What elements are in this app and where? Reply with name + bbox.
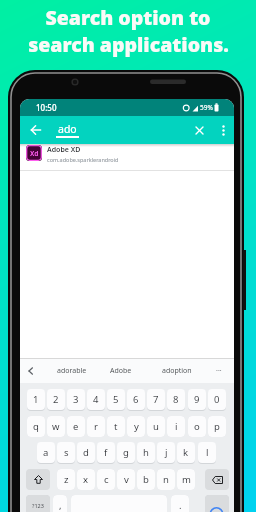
button[interactable]: w xyxy=(47,416,65,437)
staticText: 2 xyxy=(53,393,59,406)
staticText: search applications. xyxy=(28,31,229,58)
button[interactable]: a xyxy=(37,442,55,463)
staticText: g xyxy=(123,446,129,459)
button[interactable]: m xyxy=(177,469,195,490)
button[interactable]: c xyxy=(97,469,115,490)
staticText: ··· xyxy=(216,366,222,376)
button[interactable]: 0 xyxy=(208,389,226,410)
button[interactable]: u xyxy=(147,416,165,437)
staticText: s xyxy=(64,446,69,459)
staticText: o xyxy=(194,420,200,433)
staticText: m xyxy=(182,473,191,486)
button[interactable]: o xyxy=(188,416,206,437)
button[interactable]: ?123 xyxy=(26,495,50,512)
staticText: k xyxy=(183,446,189,459)
staticText: u xyxy=(153,420,159,433)
button[interactable]: . xyxy=(171,495,189,512)
button[interactable]: ado xyxy=(56,122,79,138)
button[interactable]: j xyxy=(157,442,175,463)
button[interactable]: Xd xyxy=(20,144,234,170)
button[interactable]: 5 xyxy=(107,389,125,410)
button[interactable]: s xyxy=(57,442,75,463)
button[interactable]: 8 xyxy=(167,389,185,410)
staticText: 1 xyxy=(33,393,39,406)
button[interactable]: b xyxy=(137,469,155,490)
button[interactable]: e xyxy=(67,416,85,437)
button[interactable]: k xyxy=(177,442,195,463)
button[interactable]: 9 xyxy=(188,389,206,410)
staticText: b xyxy=(143,473,149,486)
button[interactable]: l xyxy=(198,442,216,463)
button[interactable] xyxy=(205,495,229,512)
button[interactable]: h xyxy=(137,442,155,463)
staticText: . xyxy=(179,499,182,512)
button[interactable]: q xyxy=(27,416,45,437)
staticText: 6 xyxy=(133,393,139,406)
button[interactable]: g xyxy=(117,442,135,463)
staticText: 59% xyxy=(200,103,213,112)
button[interactable]: 4 xyxy=(87,389,105,410)
staticText: r xyxy=(94,420,98,433)
staticText: a xyxy=(43,446,49,459)
button[interactable] xyxy=(205,469,229,490)
staticText: 8 xyxy=(173,393,179,406)
staticText: , xyxy=(59,499,62,512)
button[interactable]: t xyxy=(107,416,125,437)
button[interactable]: v xyxy=(117,469,135,490)
button[interactable] xyxy=(26,469,50,490)
staticText: ado xyxy=(58,122,77,136)
button[interactable] xyxy=(29,123,43,137)
button[interactable]: 3 xyxy=(67,389,85,410)
staticText: com.adobe.sparklerandroid xyxy=(47,156,119,163)
button[interactable]: p xyxy=(208,416,226,437)
staticText: v xyxy=(124,473,129,486)
staticText: f xyxy=(104,446,108,459)
button[interactable]: x xyxy=(77,469,95,490)
staticText: 3 xyxy=(73,393,79,406)
button[interactable]: z xyxy=(57,469,75,490)
button[interactable]: 1 xyxy=(27,389,45,410)
staticText: 9 xyxy=(194,393,200,406)
button[interactable]: i xyxy=(167,416,185,437)
staticText: l xyxy=(206,446,209,459)
button[interactable]: f xyxy=(97,442,115,463)
staticText: t xyxy=(114,420,118,433)
button[interactable]: 6 xyxy=(127,389,145,410)
staticText: q xyxy=(33,420,39,433)
button[interactable]: 2 xyxy=(47,389,65,410)
button[interactable]: d xyxy=(77,442,95,463)
staticText: x xyxy=(83,473,89,486)
staticText: 10:50 xyxy=(36,102,57,113)
button[interactable]: 7 xyxy=(147,389,165,410)
staticText: w xyxy=(52,420,60,433)
staticText: 0 xyxy=(214,393,220,406)
staticText: y xyxy=(134,420,139,433)
staticText: e xyxy=(73,420,79,433)
button[interactable]: , xyxy=(53,495,67,512)
button[interactable]: y xyxy=(127,416,145,437)
staticText: Xd xyxy=(30,149,39,158)
button[interactable]: n xyxy=(157,469,175,490)
staticText: Adobe XD xyxy=(47,145,81,155)
staticText: Search option to xyxy=(45,4,211,31)
staticText: 4 xyxy=(93,393,99,406)
staticText: d xyxy=(83,446,89,459)
staticText: ?123 xyxy=(32,502,44,509)
staticText: j xyxy=(165,446,168,459)
button[interactable] xyxy=(190,121,208,139)
staticText: c xyxy=(104,473,109,486)
button[interactable] xyxy=(215,121,231,139)
staticText: n xyxy=(163,473,169,486)
staticText: z xyxy=(64,473,69,486)
staticText: adorable xyxy=(57,366,87,376)
staticText: p xyxy=(214,420,220,433)
staticText: h xyxy=(143,446,149,459)
staticText: adoption xyxy=(162,366,192,376)
staticText: 5 xyxy=(113,393,119,406)
staticText: Adobe xyxy=(110,366,132,376)
button[interactable]: r xyxy=(87,416,105,437)
staticText: 7 xyxy=(153,393,159,406)
staticText: i xyxy=(175,420,178,433)
